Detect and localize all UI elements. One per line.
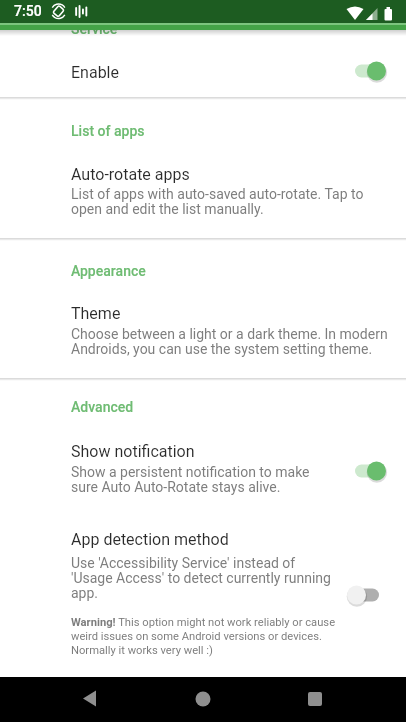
staticText: Enable [71, 63, 119, 82]
button[interactable]: Enable [0, 44, 406, 97]
staticText: Service [71, 21, 118, 37]
button[interactable] [291, 677, 339, 722]
staticText: List of apps [71, 123, 145, 139]
staticText: Warning! This option might not work reli… [71, 616, 336, 657]
staticText: Appearance [71, 263, 146, 279]
staticText: Show a persistent notification to make s… [71, 464, 310, 496]
staticText: Choose between a light or a dark theme. … [71, 326, 388, 358]
staticText: App detection method [71, 530, 229, 549]
staticText: Theme [71, 304, 121, 323]
staticText: Use 'Accessibility Service' instead of '… [71, 555, 331, 602]
staticText: 7:50 [14, 3, 42, 19]
button[interactable] [66, 677, 114, 722]
staticText: Show notification [71, 442, 195, 461]
staticText: Auto-rotate apps [71, 165, 190, 184]
button[interactable]: App detection method [0, 517, 406, 617]
button[interactable]: Auto-rotate apps [0, 152, 406, 238]
staticText: List of apps with auto-saved auto-rotate… [71, 186, 364, 218]
staticText: Advanced [71, 399, 134, 415]
button[interactable]: Theme [0, 292, 406, 378]
button[interactable] [179, 677, 227, 722]
button[interactable]: Show notification [0, 428, 406, 508]
